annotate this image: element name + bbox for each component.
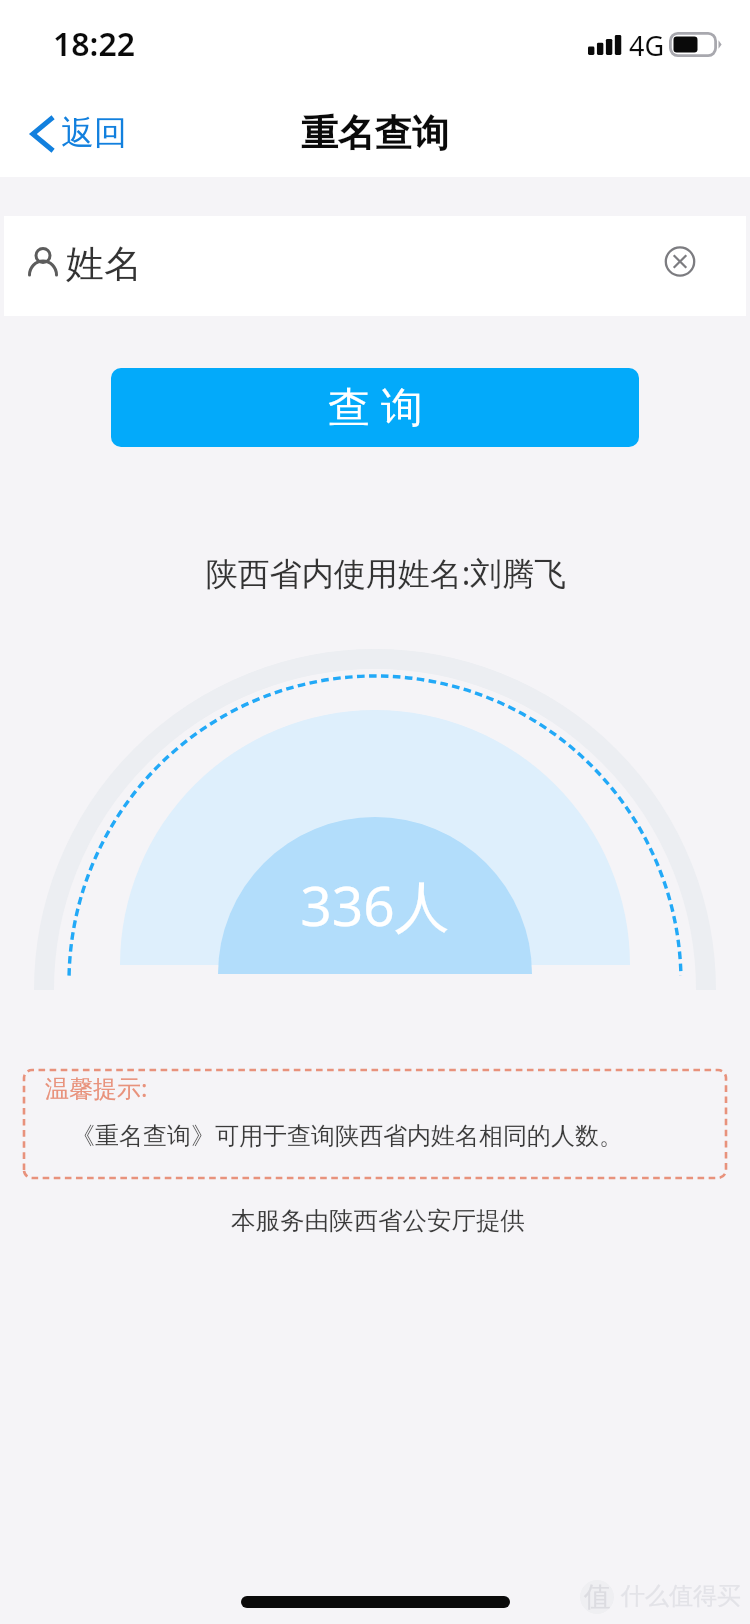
- staticText: 18:22: [53, 22, 136, 66]
- button[interactable]: 姓名: [4, 216, 746, 316]
- button[interactable]: Back: [0, 95, 145, 177]
- staticText: 什么值得买: [621, 1581, 741, 1611]
- staticText: 336人: [0, 867, 750, 942]
- staticText: 本服务由陕西省公安厅提供: [3, 1205, 750, 1236]
- staticText: 值: [584, 1580, 611, 1614]
- staticText: 重名查询: [0, 110, 750, 157]
- staticText: 《重名查询》可用于查询陕西省内姓名相同的人数。: [71, 1121, 623, 1151]
- button[interactable]: Clear: [657, 243, 703, 289]
- staticText: 返回: [61, 112, 127, 154]
- staticText: 温馨提示:: [45, 1071, 148, 1104]
- staticText: 4G: [629, 27, 665, 64]
- staticText: 查 询: [328, 377, 423, 434]
- staticText: 姓名: [66, 240, 142, 288]
- staticText: 陕西省内使用姓名:刘腾飞: [11, 551, 750, 595]
- button[interactable]: 查 询: [111, 368, 639, 447]
